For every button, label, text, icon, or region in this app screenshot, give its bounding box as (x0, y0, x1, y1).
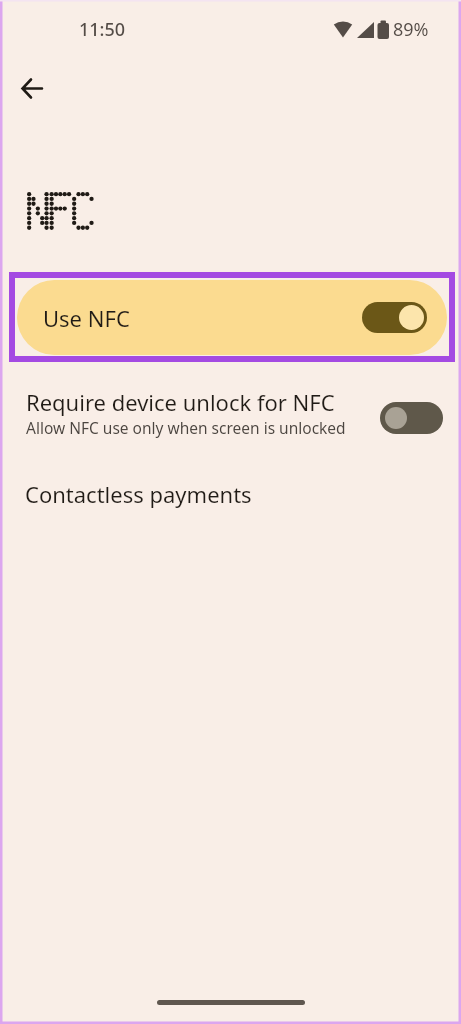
staticText: Allow NFC use only when screen is unlock… (26, 417, 346, 438)
staticText: Contactless payments (25, 479, 252, 509)
staticText: 89% (393, 17, 429, 42)
staticText: Require device unlock for NFC (26, 387, 335, 417)
button[interactable] (9, 66, 55, 112)
staticText: 11:50 (79, 17, 126, 42)
staticText: Use NFC (43, 303, 130, 333)
button[interactable]: Use NFC (17, 280, 447, 355)
button[interactable]: Require device unlock for NFC (0, 386, 461, 450)
button[interactable]: Contactless payments (0, 474, 461, 522)
